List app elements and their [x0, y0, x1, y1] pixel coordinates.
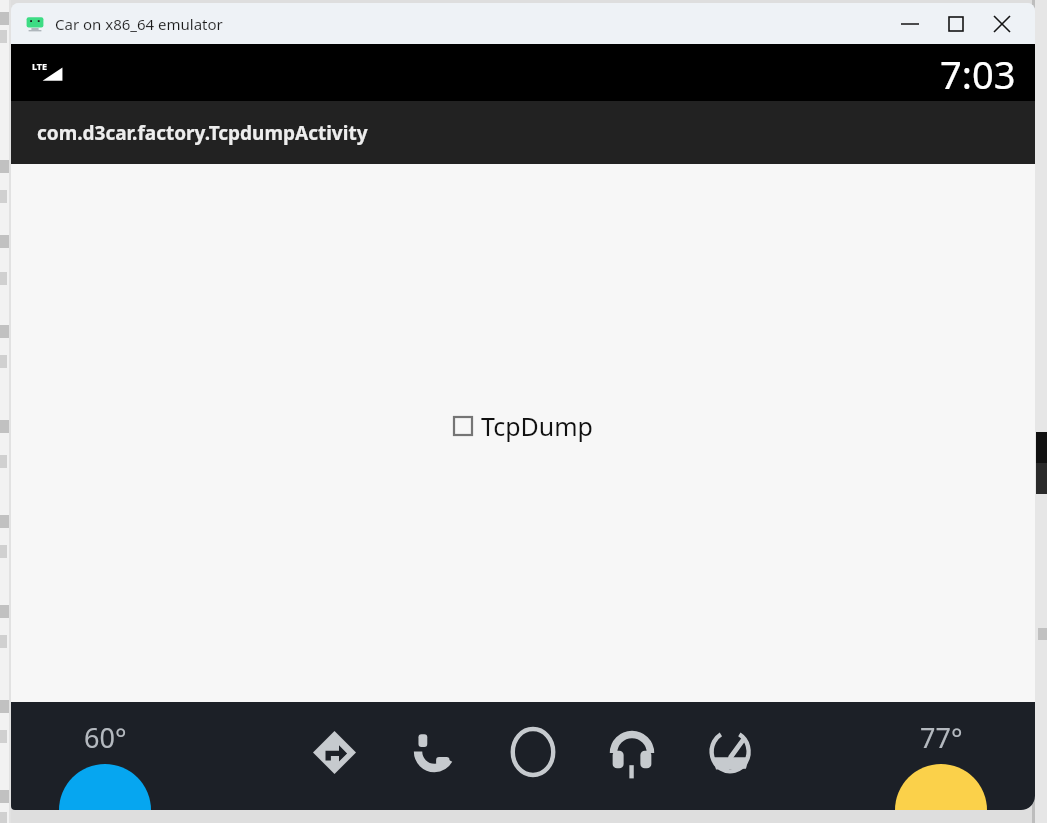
staticText: Car on x86_64 emulator	[55, 14, 223, 34]
button[interactable]: 60°	[57, 702, 153, 810]
button[interactable]: Media	[592, 702, 671, 810]
button[interactable]: Maximize	[933, 3, 979, 44]
button[interactable]: Home	[493, 702, 572, 810]
button[interactable]: TcpDump	[450, 405, 597, 447]
button[interactable]: Dashboard	[691, 702, 770, 810]
staticText: 7:03	[940, 48, 1016, 100]
button[interactable]: 77°	[893, 702, 989, 810]
button[interactable]: Minimize	[887, 3, 933, 44]
button[interactable]: Close	[979, 3, 1025, 44]
staticText: 77°	[920, 719, 963, 756]
button[interactable]: Phone	[394, 702, 473, 810]
button[interactable]: Navigation	[295, 702, 374, 810]
staticText: LTE	[32, 60, 48, 72]
staticText: 60°	[84, 719, 127, 756]
staticText: TcpDump	[481, 409, 593, 443]
staticText: com.d3car.factory.TcpdumpActivity	[37, 120, 368, 146]
